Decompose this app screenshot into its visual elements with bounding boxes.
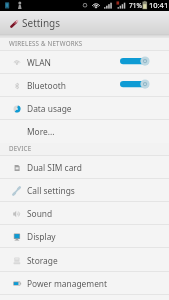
button[interactable]: Storage [0,248,169,272]
button[interactable]: Power management [0,272,169,295]
staticText: WLAN [27,57,51,68]
staticText: Sound [27,208,53,219]
button[interactable]: More... [0,120,169,143]
staticText: 10:41 [149,0,169,10]
staticText: 71% [129,1,142,10]
staticText: WIRELESS & NETWORKS [9,39,83,47]
staticText: Display [27,231,56,242]
staticText: Power management [27,278,108,289]
button[interactable] [120,74,149,97]
button[interactable]: Bluetooth [0,74,169,97]
button[interactable]: Call settings [0,179,169,202]
staticText: Dual SIM card [27,162,82,173]
staticText: Data usage [27,103,72,114]
staticText: Settings [22,16,61,30]
staticText: Call settings [27,185,75,196]
staticText: Storage [27,255,58,266]
button[interactable]: Dual SIM card [0,156,169,179]
button[interactable]: WLAN [0,51,169,74]
staticText: More... [27,126,55,137]
button[interactable]: Display [0,225,169,248]
staticText: Bluetooth [27,80,66,91]
button[interactable] [120,51,149,74]
staticText: DEVICE [9,144,32,152]
button[interactable]: Data usage [0,97,169,120]
button[interactable]: Sound [0,202,169,225]
